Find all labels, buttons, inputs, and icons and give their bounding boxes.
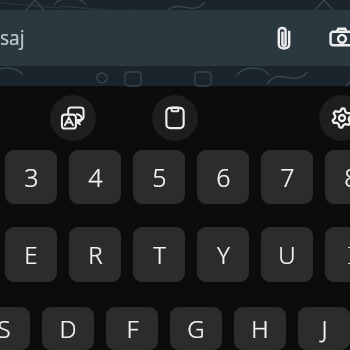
- button[interactable]: T: [133, 227, 185, 282]
- button[interactable]: E: [5, 227, 57, 282]
- button[interactable]: D: [42, 307, 94, 350]
- button[interactable]: 6: [197, 150, 249, 204]
- staticText: R: [88, 238, 103, 271]
- staticText: 4: [88, 160, 103, 194]
- button[interactable]: I: [325, 227, 350, 282]
- button[interactable]: F: [106, 307, 158, 350]
- staticText: F: [126, 312, 139, 345]
- button[interactable]: U: [261, 227, 313, 282]
- button[interactable]: R: [69, 227, 121, 282]
- staticText: E: [24, 238, 38, 271]
- button[interactable]: Clipboard: [152, 95, 198, 141]
- button[interactable]: 8: [325, 150, 350, 204]
- button[interactable]: G: [170, 307, 222, 350]
- button[interactable]: saj: [0, 10, 350, 66]
- staticText: 8: [344, 160, 350, 194]
- button[interactable]: S: [0, 307, 30, 350]
- button[interactable]: 5: [133, 150, 185, 204]
- staticText: saj: [0, 25, 25, 51]
- button[interactable]: J: [298, 307, 350, 350]
- staticText: 5: [152, 160, 167, 194]
- staticText: I: [347, 238, 350, 271]
- button[interactable]: 3: [5, 150, 57, 204]
- staticText: S: [0, 312, 11, 345]
- button[interactable]: Translate: [50, 95, 96, 141]
- button[interactable]: Y: [197, 227, 249, 282]
- button[interactable]: 7: [261, 150, 313, 204]
- staticText: J: [321, 312, 328, 345]
- staticText: 6: [216, 160, 231, 194]
- staticText: H: [251, 312, 269, 345]
- button[interactable]: H: [234, 307, 286, 350]
- staticText: 7: [280, 160, 295, 194]
- button[interactable]: 4: [69, 150, 121, 204]
- staticText: Y: [217, 238, 230, 271]
- button[interactable]: Settings: [319, 95, 350, 141]
- button[interactable]: Camera: [320, 16, 350, 60]
- button[interactable]: Attach file: [262, 16, 306, 60]
- staticText: G: [187, 312, 205, 345]
- staticText: U: [278, 238, 296, 271]
- staticText: D: [59, 312, 77, 345]
- staticText: 3: [24, 160, 39, 194]
- staticText: T: [153, 238, 166, 271]
